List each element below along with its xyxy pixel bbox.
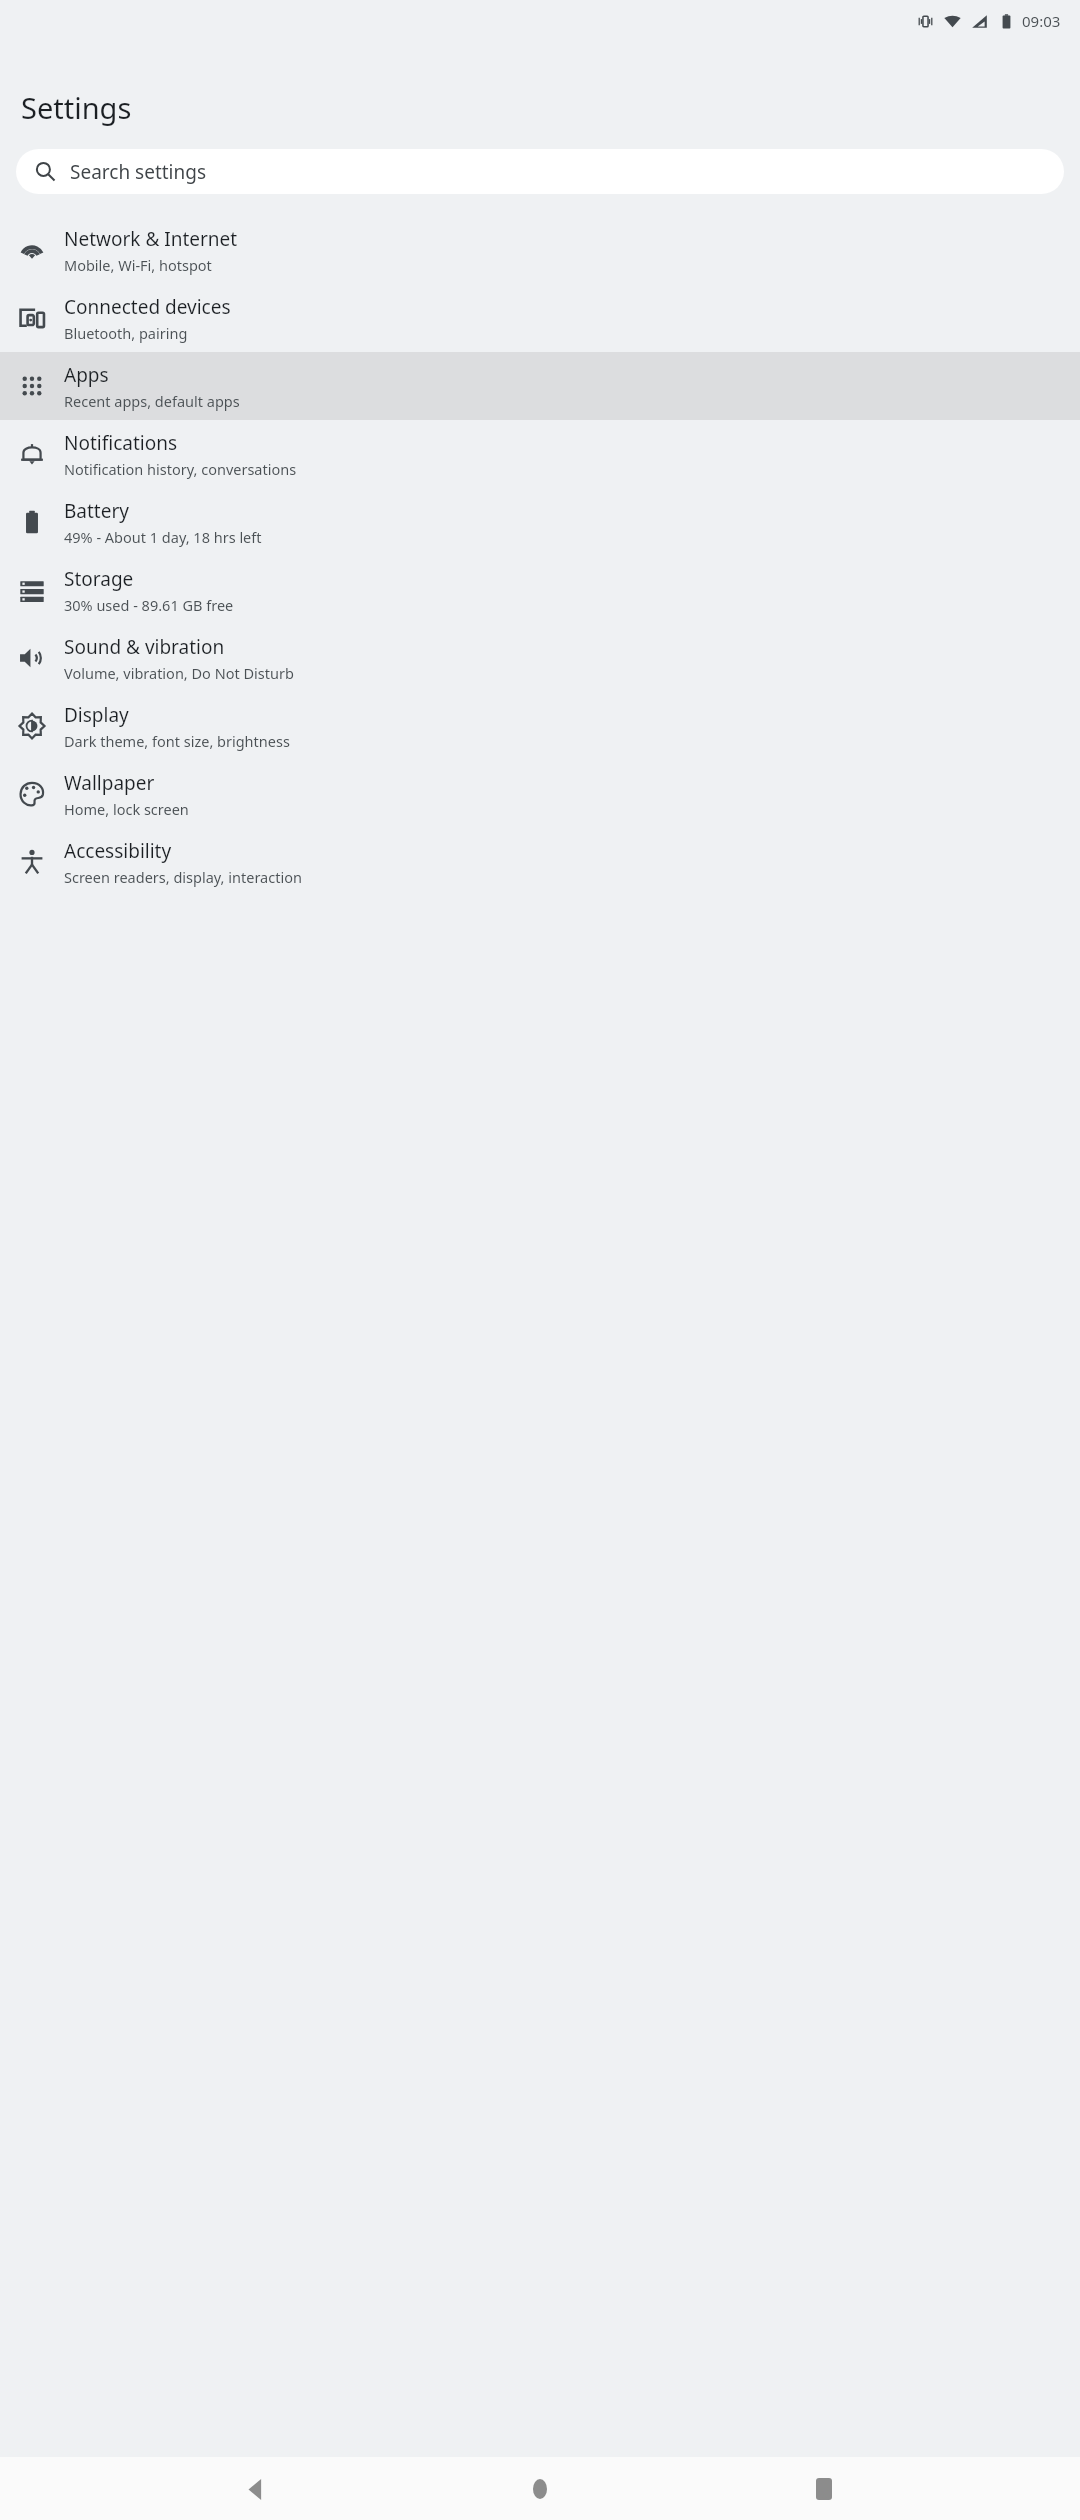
staticText: 49% - About 1 day, 18 hrs left (64, 527, 262, 547)
staticText: Mobile, Wi-Fi, hotspot (64, 255, 212, 275)
staticText: Bluetooth, pairing (64, 323, 188, 343)
button[interactable]: Connected devices (0, 284, 1080, 352)
button[interactable]: Recent apps (796, 2461, 852, 2517)
button[interactable]: Search settings (16, 149, 1064, 194)
button[interactable]: Sound & vibration (0, 624, 1080, 692)
button[interactable]: Home (512, 2461, 568, 2517)
staticText: Notifications (64, 430, 178, 456)
button[interactable]: Wallpaper (0, 760, 1080, 828)
staticText: Battery (64, 498, 129, 524)
button[interactable]: Notifications (0, 420, 1080, 488)
staticText: Storage (64, 566, 134, 592)
staticText: 30% used - 89.61 GB free (64, 595, 234, 615)
staticText: Recent apps, default apps (64, 391, 240, 411)
button[interactable]: Accessibility (0, 828, 1080, 896)
staticText: Dark theme, font size, brightness (64, 731, 290, 751)
button[interactable]: Battery (0, 488, 1080, 556)
staticText: Screen readers, display, interaction (64, 867, 302, 887)
button[interactable]: Storage (0, 556, 1080, 624)
staticText: Apps (64, 362, 109, 388)
staticText: Connected devices (64, 294, 231, 320)
button[interactable]: Apps (0, 352, 1080, 420)
staticText: Accessibility (64, 838, 172, 864)
staticText: Display (64, 702, 129, 728)
staticText: Notification history, conversations (64, 459, 297, 479)
staticText: Sound & vibration (64, 634, 225, 660)
button[interactable]: Display (0, 692, 1080, 760)
button[interactable]: Back (228, 2461, 284, 2517)
button[interactable]: Network & Internet (0, 216, 1080, 284)
staticText: Network & Internet (64, 226, 238, 252)
staticText: Volume, vibration, Do Not Disturb (64, 663, 294, 683)
staticText: Search settings (70, 159, 207, 185)
staticText: Settings (21, 88, 132, 127)
staticText: 09:03 (1022, 11, 1061, 31)
staticText: Wallpaper (64, 770, 155, 796)
staticText: Home, lock screen (64, 799, 189, 819)
